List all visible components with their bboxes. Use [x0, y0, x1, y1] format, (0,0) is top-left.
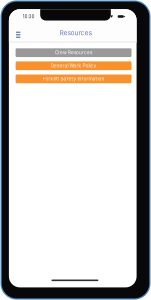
button[interactable]: Menu [15, 30, 26, 41]
staticText: Forklift Safety Information [43, 76, 105, 82]
button[interactable]: Forklift Safety Information [16, 74, 131, 83]
staticText: Crew Resources [55, 50, 92, 55]
button[interactable]: General Work Policy [16, 61, 131, 70]
staticText: Resources [60, 29, 92, 37]
button[interactable]: Crew Resources [16, 48, 131, 57]
staticText: General Work Policy [51, 63, 97, 69]
staticText: 10:30 [23, 14, 35, 19]
